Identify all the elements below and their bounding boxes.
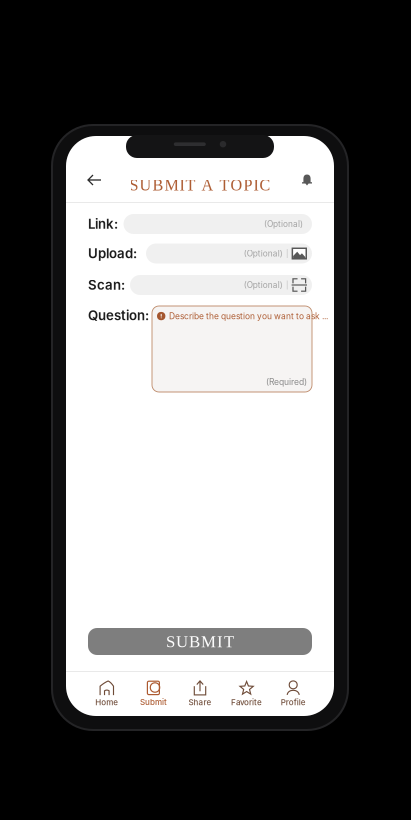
staticText: Describe the question you want to ask ..… <box>169 311 328 321</box>
button[interactable]: Submit <box>130 678 177 710</box>
staticText: (Optional) <box>244 280 283 290</box>
staticText: Link: <box>88 216 118 232</box>
staticText: Profile <box>281 697 306 707</box>
staticText: Question: <box>88 307 149 323</box>
button[interactable]: S U B M I T <box>88 628 312 655</box>
staticText: S U B M I T <box>166 632 234 651</box>
staticText: (Optional) <box>244 248 283 258</box>
staticText: Scan: <box>88 277 125 293</box>
staticText: (Optional) <box>264 219 303 229</box>
staticText: Upload: <box>88 245 137 261</box>
button[interactable]: Notifications <box>297 162 317 197</box>
button[interactable]: Share <box>177 678 223 710</box>
staticText: Home <box>95 698 118 707</box>
staticText: S U B M I T A T O P I C <box>129 176 270 194</box>
staticText: Submit <box>140 697 167 707</box>
button[interactable]: Home <box>83 678 130 710</box>
button[interactable]: Back <box>83 163 106 197</box>
staticText: Favorite <box>231 697 262 707</box>
button[interactable]: Profile <box>270 678 316 710</box>
staticText: Share <box>188 697 211 707</box>
staticText: (Required) <box>266 377 307 387</box>
button[interactable]: Favorite <box>223 678 270 710</box>
